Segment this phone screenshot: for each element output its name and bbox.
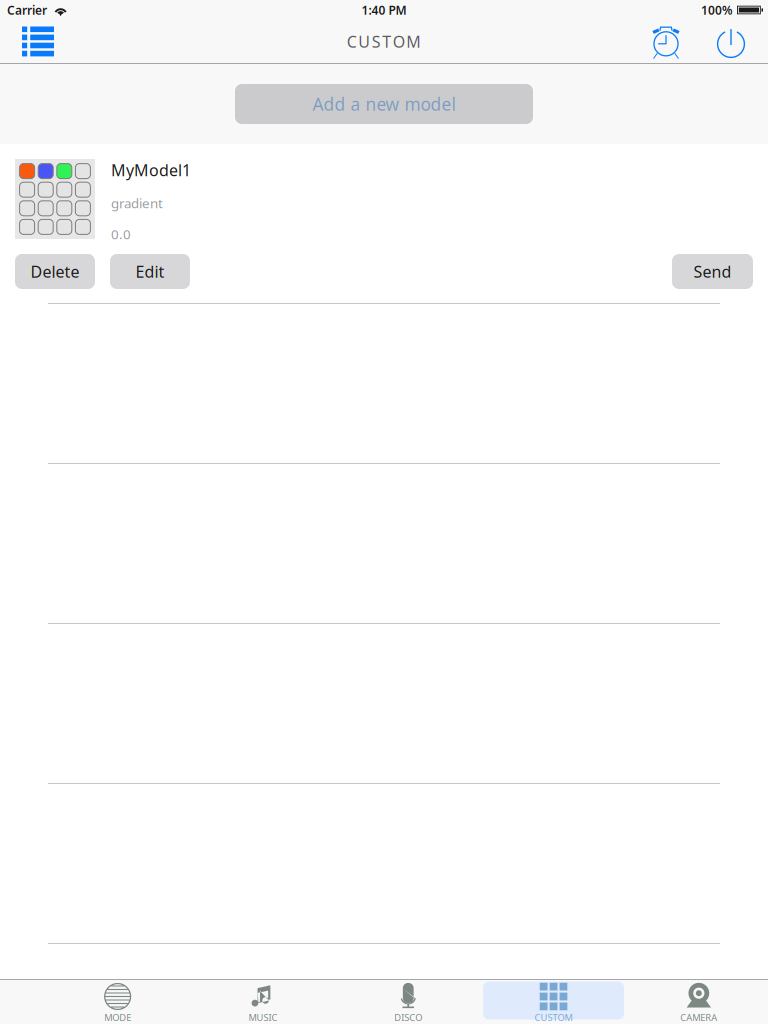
staticText: Send	[693, 261, 731, 282]
staticText: gradient	[111, 194, 163, 212]
button[interactable]: Power	[709, 20, 753, 63]
button[interactable]: Alarm	[644, 20, 688, 63]
button[interactable]: CAMERA	[626, 979, 768, 1024]
button[interactable]: Edit	[110, 254, 190, 289]
button[interactable]: CUSTOM	[481, 979, 626, 1024]
staticText: 100%	[701, 2, 733, 18]
button[interactable]: Delete	[15, 254, 95, 289]
staticText: CUSTOM	[347, 31, 421, 52]
button[interactable]: DISCO	[336, 979, 481, 1024]
button[interactable]: MODE	[45, 979, 190, 1024]
staticText: DISCO	[394, 1011, 422, 1024]
staticText: MUSIC	[248, 1011, 277, 1024]
staticText: Delete	[30, 261, 79, 282]
staticText: MODE	[104, 1011, 131, 1024]
staticText: Add a new model	[312, 92, 455, 115]
button[interactable]: Send	[672, 254, 753, 289]
staticText: CAMERA	[680, 1011, 717, 1024]
staticText: 1:40 PM	[361, 2, 406, 18]
staticText: Edit	[135, 261, 164, 282]
button[interactable]: Models	[8, 20, 68, 63]
button[interactable]: Add a new model	[235, 84, 533, 124]
staticText: Carrier	[7, 2, 47, 18]
staticText: 0.0	[111, 225, 131, 243]
staticText: MyModel1	[111, 159, 191, 181]
staticText: CUSTOM	[535, 1011, 573, 1024]
button[interactable]: MUSIC	[190, 979, 336, 1024]
